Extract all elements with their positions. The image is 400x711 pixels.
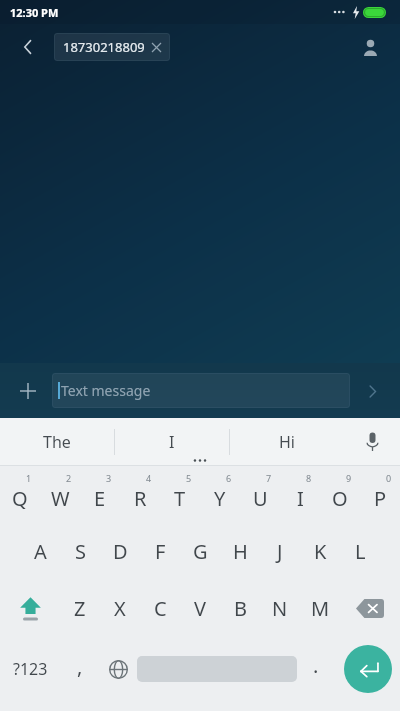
- button[interactable]: J: [260, 523, 300, 580]
- staticText: R: [134, 485, 147, 512]
- button[interactable]: ,: [61, 637, 99, 701]
- staticText: Hi: [279, 431, 295, 453]
- staticText: ?123: [13, 658, 48, 680]
- button[interactable]: Contact: [348, 25, 392, 69]
- staticText: S: [75, 538, 86, 565]
- button[interactable]: Send: [354, 373, 390, 409]
- button[interactable]: A: [20, 523, 60, 580]
- staticText: B: [234, 595, 247, 622]
- staticText: 0: [386, 472, 392, 484]
- button[interactable]: 9: [320, 466, 360, 523]
- staticText: 9: [346, 472, 352, 484]
- button[interactable]: Voice input: [344, 418, 400, 465]
- staticText: E: [94, 485, 106, 512]
- staticText: 2: [66, 472, 72, 484]
- button[interactable]: 2: [40, 466, 80, 523]
- staticText: Text message: [61, 381, 151, 400]
- staticText: I: [169, 431, 175, 453]
- staticText: 5: [186, 472, 192, 484]
- button[interactable]: B: [220, 580, 260, 637]
- staticText: 8: [306, 472, 312, 484]
- staticText: U: [253, 485, 268, 512]
- button[interactable]: ?123: [0, 637, 61, 701]
- button[interactable]: 0: [360, 466, 400, 523]
- staticText: N: [272, 595, 288, 622]
- staticText: .: [313, 652, 319, 679]
- button[interactable]: S: [60, 523, 100, 580]
- button[interactable]: L: [340, 523, 380, 580]
- button[interactable]: 4: [120, 466, 160, 523]
- button[interactable]: The: [0, 418, 114, 465]
- button[interactable]: G: [180, 523, 220, 580]
- button[interactable]: C: [140, 580, 180, 637]
- staticText: A: [34, 538, 47, 565]
- button[interactable]: 18730218809: [54, 33, 170, 61]
- button[interactable]: 5: [160, 466, 200, 523]
- button[interactable]: H: [220, 523, 260, 580]
- button[interactable]: M: [300, 580, 340, 637]
- button[interactable]: 7: [240, 466, 280, 523]
- staticText: H: [233, 538, 248, 565]
- staticText: P: [374, 485, 387, 512]
- button[interactable]: V: [180, 580, 220, 637]
- staticText: X: [114, 595, 126, 622]
- staticText: 6: [226, 472, 232, 484]
- staticText: I: [297, 485, 304, 512]
- button[interactable]: I: [115, 418, 229, 465]
- staticText: J: [277, 538, 283, 565]
- button[interactable]: F: [140, 523, 180, 580]
- staticText: L: [355, 538, 366, 565]
- staticText: Z: [74, 595, 86, 622]
- button[interactable]: [137, 637, 297, 701]
- staticText: O: [332, 485, 348, 512]
- button[interactable]: X: [100, 580, 140, 637]
- staticText: 7: [266, 472, 272, 484]
- button[interactable]: Attach: [10, 373, 46, 409]
- staticText: V: [194, 595, 206, 622]
- staticText: K: [314, 538, 327, 565]
- staticText: D: [113, 538, 128, 565]
- staticText: T: [174, 485, 186, 512]
- staticText: W: [51, 485, 70, 512]
- button[interactable]: Backspace: [340, 580, 400, 637]
- staticText: The: [43, 431, 71, 453]
- button[interactable]: N: [260, 580, 300, 637]
- button[interactable]: Z: [60, 580, 100, 637]
- staticText: 1: [26, 472, 32, 484]
- staticText: ,: [77, 653, 83, 680]
- staticText: 4: [146, 472, 152, 484]
- staticText: 18730218809: [63, 38, 145, 56]
- button[interactable]: K: [300, 523, 340, 580]
- staticText: M: [311, 595, 330, 622]
- button[interactable]: Change language: [99, 637, 137, 701]
- staticText: 3: [106, 472, 112, 484]
- staticText: Q: [12, 485, 28, 512]
- button[interactable]: Text message: [52, 373, 350, 408]
- button[interactable]: Back: [8, 27, 48, 67]
- button[interactable]: 3: [80, 466, 120, 523]
- staticText: C: [154, 595, 167, 622]
- button[interactable]: D: [100, 523, 140, 580]
- button[interactable]: .: [297, 637, 335, 701]
- button[interactable]: Hi: [230, 418, 344, 465]
- staticText: G: [193, 538, 208, 565]
- button[interactable]: 8: [280, 466, 320, 523]
- button[interactable]: Enter: [335, 637, 400, 701]
- staticText: F: [155, 538, 166, 565]
- staticText: Y: [214, 485, 226, 512]
- button[interactable]: 1: [0, 466, 40, 523]
- staticText: 12:30 PM: [10, 5, 59, 20]
- button[interactable]: Shift: [0, 580, 60, 637]
- button[interactable]: 6: [200, 466, 240, 523]
